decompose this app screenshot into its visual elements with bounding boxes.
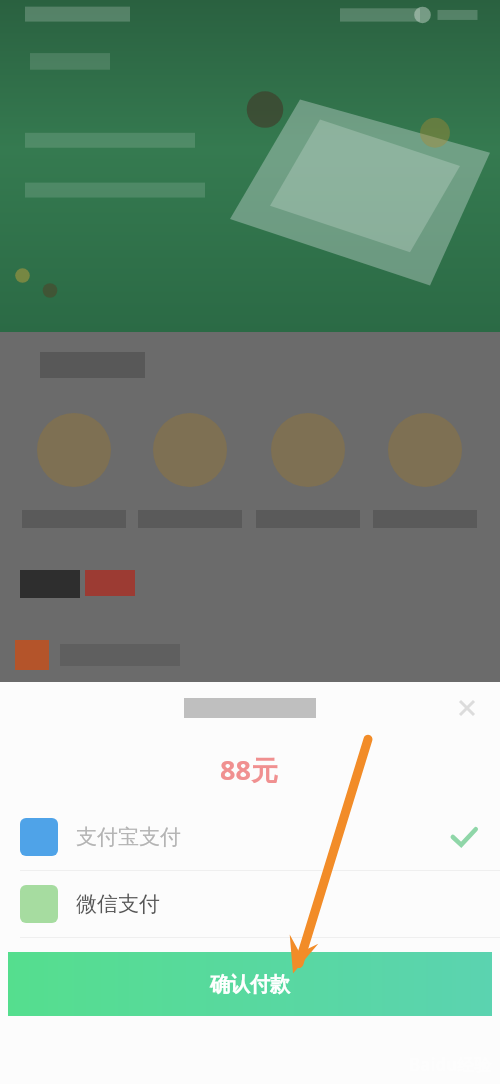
button[interactable]: Close (454, 695, 480, 721)
staticText: 支付宝支付 (76, 824, 181, 850)
staticText: 微信支付 (76, 891, 160, 917)
button[interactable]: 确认付款 (8, 952, 492, 1016)
staticText: 88元 (220, 751, 278, 788)
button[interactable]: 支付宝支付 (0, 804, 500, 870)
button[interactable]: 微信支付 (0, 871, 500, 937)
staticText: 确认付款 (210, 972, 290, 997)
